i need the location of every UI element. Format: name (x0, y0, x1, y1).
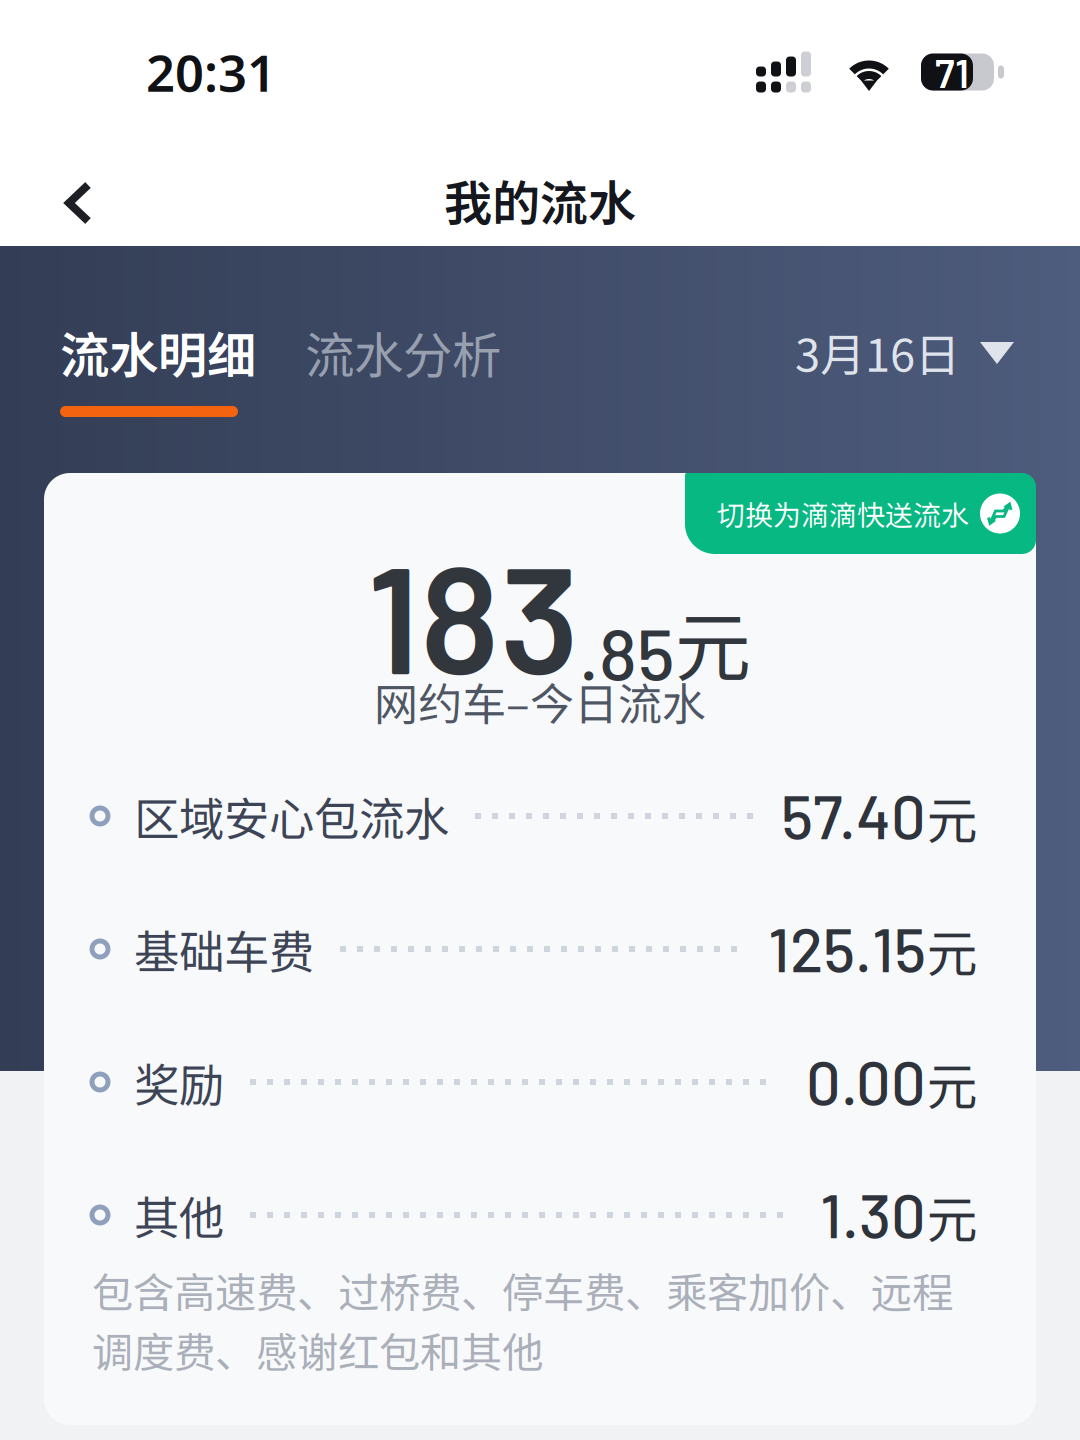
staticText: 我的流水 (444, 165, 636, 235)
staticText: 其他 (134, 1182, 224, 1248)
staticText: 元 (927, 1180, 978, 1253)
button[interactable]: 流水分析 (305, 320, 501, 384)
staticText: 183 (367, 525, 579, 704)
staticText: 57.40 (781, 778, 926, 852)
staticText: 3月16日 (795, 319, 960, 385)
staticText: 1.30 (820, 1177, 926, 1251)
staticText: 元 (927, 781, 978, 854)
staticText: 元 (927, 914, 978, 987)
staticText: .85 (579, 609, 675, 695)
staticText: 切换为滴滴快送流水 (717, 493, 969, 534)
staticText: 125.15 (768, 911, 926, 985)
staticText: 流水明细 (60, 316, 256, 388)
staticText: 网约车–今日流水 (374, 669, 706, 733)
staticText: 71 (935, 48, 969, 96)
staticText: 0.00 (806, 1044, 926, 1118)
staticText: 区域安心包流水 (134, 783, 449, 849)
staticText: 基础车费 (134, 916, 314, 982)
staticText: 20:31 (146, 38, 276, 106)
staticText: 元 (927, 1047, 978, 1120)
staticText: 包含高速费、过桥费、停车费、乘客加价、远程 调度费、感谢红包和其他 (92, 1260, 953, 1380)
button[interactable]: Back (0, 131, 128, 233)
staticText: 奖励 (134, 1049, 224, 1115)
button[interactable]: 3月16日 (795, 320, 1010, 384)
button[interactable]: 切换为滴滴快送流水 (685, 473, 1036, 554)
staticText: 元 (675, 587, 751, 697)
button[interactable]: 流水明细 (60, 320, 256, 417)
staticText: 流水分析 (305, 316, 501, 388)
